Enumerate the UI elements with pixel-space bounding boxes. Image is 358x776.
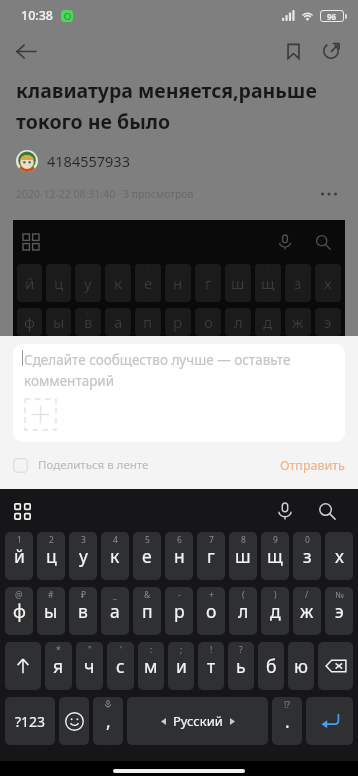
button[interactable]: .: [272, 697, 302, 745]
button[interactable]: й: [5, 532, 33, 580]
button[interactable]: Отправить: [280, 457, 345, 474]
button[interactable]: [318, 642, 353, 690]
button[interactable]: ф: [5, 587, 33, 635]
staticText: е: [142, 544, 152, 568]
button[interactable]: д: [261, 587, 289, 635]
staticText: ф: [24, 312, 36, 332]
button[interactable]: Поделиться в ленте: [13, 457, 149, 473]
staticText: ?: [239, 644, 243, 656]
button[interactable]: т: [198, 642, 224, 690]
button[interactable]: з: [293, 532, 321, 580]
button[interactable]: ш: [229, 532, 257, 580]
button[interactable]: Сделайте сообщество лучше — оставьте ком…: [13, 344, 345, 442]
button[interactable]: More options: [316, 181, 342, 207]
button[interactable]: Bookmark: [274, 32, 312, 70]
staticText: ): [274, 589, 277, 601]
button[interactable]: [306, 697, 353, 745]
button[interactable]: ь: [228, 642, 254, 690]
staticText: 7: [209, 534, 214, 546]
button[interactable]: а: [101, 587, 129, 635]
staticText: г: [207, 544, 215, 568]
staticText: к: [114, 273, 122, 293]
staticText: п: [143, 312, 153, 332]
button[interactable]: Back: [6, 31, 46, 71]
button[interactable]: г: [197, 532, 225, 580]
staticText: в: [84, 312, 93, 332]
button[interactable]: ,: [93, 697, 123, 745]
button[interactable]: 4184557933: [16, 150, 130, 172]
button[interactable]: в: [69, 587, 97, 635]
staticText: л: [238, 599, 249, 623]
button[interactable]: ж: [293, 587, 321, 635]
button[interactable]: о: [197, 587, 225, 635]
staticText: н: [173, 273, 183, 293]
staticText: к: [110, 544, 120, 568]
staticText: ф: [13, 599, 26, 623]
button[interactable]: и: [168, 642, 194, 690]
staticText: ж: [300, 599, 314, 623]
staticText: л: [234, 312, 243, 332]
button[interactable]: Share: [312, 32, 350, 70]
button[interactable]: м: [138, 642, 164, 690]
button[interactable]: х: [325, 532, 353, 580]
staticText: 2: [49, 534, 54, 546]
staticText: х: [335, 544, 344, 568]
staticText: 10:38: [21, 7, 54, 24]
staticText: 1: [17, 534, 22, 546]
button[interactable]: л: [229, 587, 257, 635]
staticText: Поделиться в ленте: [38, 457, 149, 473]
staticText: х: [324, 273, 332, 293]
button[interactable]: с: [107, 642, 134, 690]
button[interactable]: у: [69, 532, 97, 580]
button[interactable]: е: [133, 532, 161, 580]
button[interactable]: ц: [37, 532, 65, 580]
button[interactable]: э: [325, 587, 353, 635]
button[interactable]: ю: [288, 642, 314, 690]
button[interactable]: Search: [310, 494, 344, 528]
button[interactable]: ч: [76, 642, 103, 690]
staticText: ₽: [81, 589, 86, 601]
staticText: ч: [84, 654, 95, 678]
staticText: 4: [113, 534, 118, 546]
staticText: р: [173, 312, 183, 332]
staticText: ж: [292, 312, 304, 332]
staticText: у: [79, 544, 88, 568]
button[interactable]: п: [133, 587, 161, 635]
staticText: ,: [106, 709, 111, 733]
staticText: Русский: [173, 712, 223, 730]
button[interactable]: ?123: [5, 697, 55, 745]
button[interactable]: щ: [261, 532, 289, 580]
staticText: ": [88, 644, 92, 656]
staticText: #: [48, 589, 54, 601]
button[interactable]: [59, 697, 89, 745]
button[interactable]: р: [165, 587, 193, 635]
button[interactable]: Apps: [6, 495, 38, 527]
button[interactable]: Русский: [127, 697, 268, 745]
button[interactable]: Voice input: [268, 494, 302, 528]
staticText: .: [285, 709, 290, 733]
staticText: 2020-12-22 08:31:40: [16, 187, 116, 201]
staticText: ы: [53, 312, 65, 332]
button[interactable]: н: [165, 532, 193, 580]
staticText: ц: [46, 544, 57, 568]
button[interactable]: ы: [37, 587, 65, 635]
staticText: №: [335, 589, 344, 601]
button[interactable]: б: [258, 642, 284, 690]
button[interactable]: [5, 642, 41, 690]
button[interactable]: к: [101, 532, 129, 580]
staticText: в: [78, 599, 88, 623]
staticText: м: [144, 654, 158, 678]
button[interactable]: й: [13, 220, 345, 336]
button[interactable]: я: [45, 642, 72, 690]
